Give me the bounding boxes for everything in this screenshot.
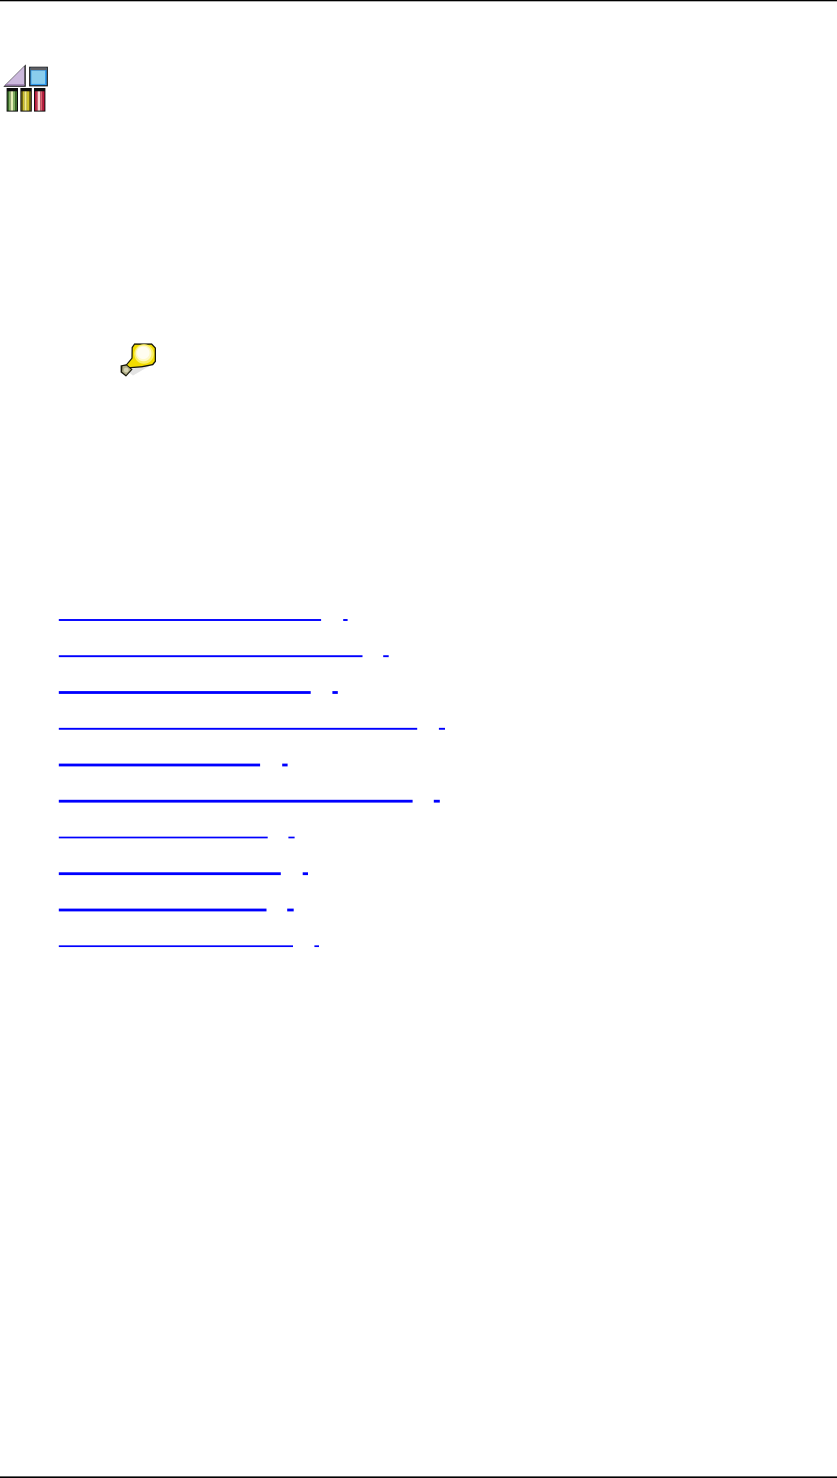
button[interactable]: Link 3 [59, 672, 338, 696]
button[interactable]: Link 4 [59, 709, 445, 733]
button[interactable]: Link 7 [59, 817, 295, 841]
button[interactable]: Link 8 [59, 854, 308, 878]
button[interactable]: Link 5 [59, 745, 288, 769]
button[interactable]: Link 1 [59, 600, 348, 624]
button[interactable]: Link 9 [59, 890, 294, 914]
button[interactable]: Link 2 [59, 636, 389, 660]
button[interactable]: Link 10 [59, 926, 319, 950]
button[interactable]: Link 6 [59, 781, 440, 805]
button[interactable]: Chart overview [3, 63, 53, 115]
